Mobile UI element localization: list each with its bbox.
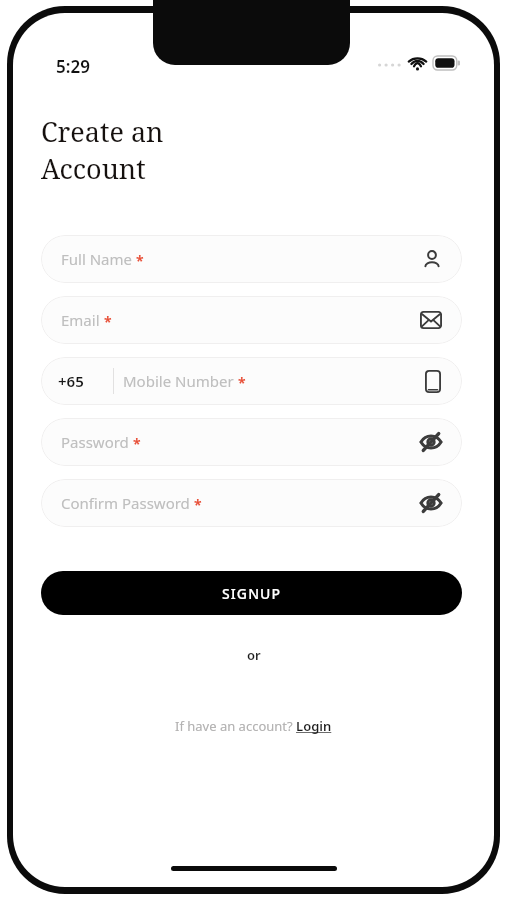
- staticText: or: [247, 646, 261, 664]
- staticText: Password: [61, 432, 129, 452]
- staticText: Confirm Password: [61, 493, 190, 513]
- button[interactable]: If have an account? Login: [169, 713, 338, 739]
- button[interactable]: Confirm password field: [41, 479, 462, 527]
- button[interactable]: Show confirm password: [418, 490, 444, 516]
- staticText: Email: [61, 310, 100, 330]
- staticText: *: [238, 373, 246, 392]
- staticText: *: [104, 312, 112, 331]
- button[interactable]: Full Name field: [41, 235, 462, 283]
- staticText: *: [194, 495, 202, 514]
- button[interactable]: Email field: [41, 296, 462, 344]
- staticText: *: [133, 434, 141, 453]
- staticText: +65: [58, 371, 84, 391]
- button[interactable]: Show password: [418, 429, 444, 455]
- staticText: 5:29: [56, 55, 90, 78]
- button[interactable]: SIGNUP: [41, 571, 462, 615]
- staticText: Mobile Number: [123, 371, 234, 391]
- staticText: *: [136, 251, 144, 270]
- button[interactable]: Mobile number field: [41, 357, 462, 405]
- staticText: If have an account? Login: [175, 717, 332, 735]
- staticText: Full Name: [61, 249, 132, 269]
- staticText: Create an Account: [41, 113, 164, 187]
- staticText: SIGNUP: [222, 584, 282, 603]
- button[interactable]: Password field: [41, 418, 462, 466]
